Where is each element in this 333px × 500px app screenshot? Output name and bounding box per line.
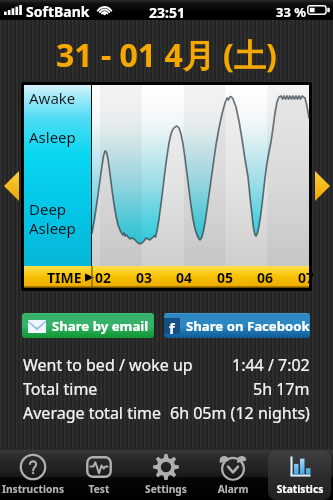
staticText: Average total time [23, 402, 162, 424]
staticText: 07 [298, 268, 315, 287]
staticText: Instructions [0, 482, 78, 496]
staticText: Share by email [52, 317, 149, 335]
staticText: 6h 05m (12 nights) [170, 402, 310, 424]
staticText: SoftBank [26, 2, 90, 21]
button[interactable]: Instructions [0, 450, 66, 500]
staticText: Share on Facebook [186, 317, 310, 335]
button[interactable]: Next day [312, 160, 332, 212]
button[interactable]: Test [66, 450, 132, 500]
staticText: Statistics [255, 482, 333, 496]
staticText: Asleep [29, 218, 76, 238]
staticText: Alarm [188, 482, 278, 496]
staticText: Asleep [29, 127, 76, 147]
button[interactable]: Alarm [199, 450, 266, 500]
staticText: TIME [47, 268, 82, 287]
staticText: Total time [23, 378, 98, 400]
staticText: 31 - 01 4月 (土) [56, 33, 277, 77]
staticText: Test [54, 482, 144, 496]
button[interactable]: Previous day [1, 160, 21, 212]
staticText: Awake [29, 88, 76, 108]
staticText: Deep [29, 199, 67, 219]
button[interactable]: f [164, 313, 310, 338]
staticText: 04 [176, 268, 193, 287]
staticText: 02 [95, 268, 112, 287]
staticText: 33 % [276, 3, 306, 21]
button[interactable]: Statistics [266, 450, 333, 500]
staticText: 03 [136, 268, 153, 287]
staticText: 23:51 [149, 3, 185, 22]
staticText: 1:44 / 7:02 [232, 354, 310, 376]
staticText: Settings [121, 482, 211, 496]
staticText: f [169, 318, 175, 334]
staticText: Went to bed / woke up [23, 354, 193, 376]
staticText: 05 [217, 268, 234, 287]
staticText: 06 [257, 268, 274, 287]
button[interactable]: Share by email [22, 313, 154, 338]
button[interactable]: Settings [132, 450, 199, 500]
staticText: 5h 17m [253, 378, 310, 400]
